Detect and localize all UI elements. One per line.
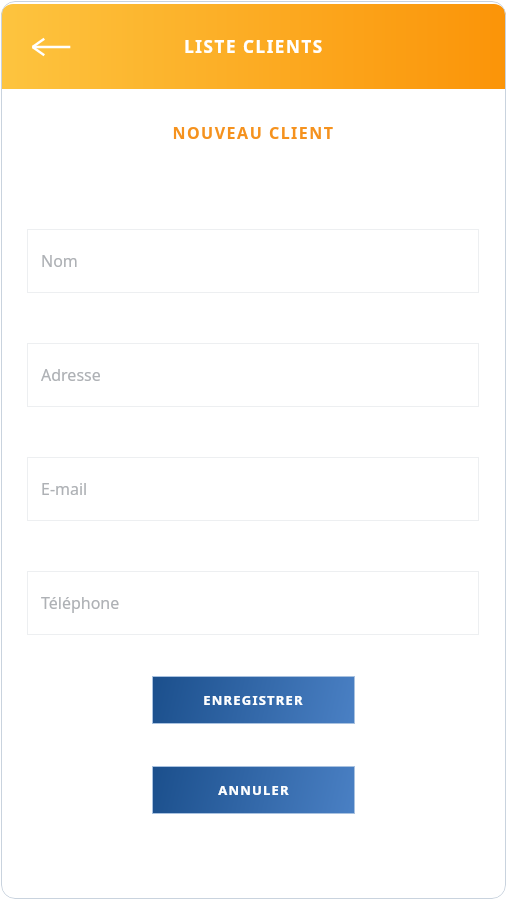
button[interactable]: ENREGISTRER <box>153 677 354 723</box>
button[interactable]: E-mail <box>27 457 479 521</box>
button[interactable]: Adresse <box>27 343 479 407</box>
button[interactable]: Nom <box>27 229 479 293</box>
staticText: ENREGISTRER <box>203 691 304 709</box>
staticText: ANNULER <box>218 781 290 799</box>
staticText: Nom <box>41 250 78 272</box>
button[interactable]: Téléphone <box>27 571 479 635</box>
staticText: E-mail <box>41 478 88 500</box>
staticText: Adresse <box>41 364 101 386</box>
button[interactable]: Back <box>23 19 79 75</box>
staticText: NOUVEAU CLIENT <box>1 122 506 144</box>
staticText: Téléphone <box>41 592 120 614</box>
staticText: LISTE CLIENTS <box>184 35 324 58</box>
button[interactable]: ANNULER <box>153 767 354 813</box>
